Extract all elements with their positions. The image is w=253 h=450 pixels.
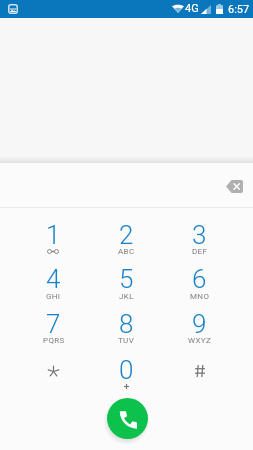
- button[interactable]: Call: [107, 398, 148, 439]
- staticText: GHI: [46, 292, 61, 301]
- button[interactable]: 3: [163, 212, 236, 257]
- button[interactable]: 1: [17, 212, 90, 257]
- staticText: 2: [119, 220, 134, 250]
- button[interactable]: 6: [163, 257, 236, 302]
- staticText: 1: [46, 220, 61, 250]
- button[interactable]: Backspace: [218, 170, 250, 202]
- button[interactable]: 4: [17, 257, 90, 302]
- staticText: 9: [192, 309, 207, 339]
- staticText: MNO: [190, 292, 210, 301]
- staticText: 6:57: [228, 3, 250, 16]
- staticText: ABC: [118, 247, 135, 256]
- staticText: TUV: [118, 336, 135, 345]
- staticText: 3: [192, 220, 207, 250]
- button[interactable]: 8: [90, 302, 163, 347]
- button[interactable]: [17, 347, 90, 392]
- button[interactable]: [163, 347, 236, 392]
- staticText: WXYZ: [188, 336, 212, 345]
- staticText: 4G: [185, 2, 199, 15]
- staticText: 5: [119, 264, 134, 294]
- button[interactable]: 5: [90, 257, 163, 302]
- staticText: 0: [119, 355, 134, 385]
- button[interactable]: 2: [90, 212, 163, 257]
- button[interactable]: 9: [163, 302, 236, 347]
- staticText: 6: [192, 264, 207, 294]
- staticText: JKL: [119, 292, 134, 301]
- staticText: 8: [119, 309, 134, 339]
- button[interactable]: 0: [90, 347, 163, 392]
- button[interactable]: 7: [17, 302, 90, 347]
- staticText: DEF: [192, 247, 208, 256]
- staticText: 4: [46, 264, 61, 294]
- staticText: 7: [46, 309, 61, 339]
- staticText: PQRS: [43, 336, 65, 345]
